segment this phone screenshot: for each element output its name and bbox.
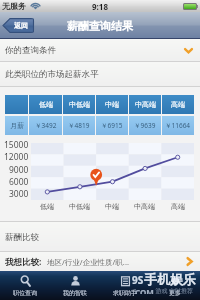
staticText: 地区/行业/企业性质/职... (47, 257, 129, 267)
staticText: 高端 (171, 202, 185, 211)
staticText: 高端 (171, 100, 185, 109)
staticText: ￥3492 (35, 121, 57, 130)
staticText: 薪酬查询结果 (67, 19, 133, 33)
button[interactable]: 我想比较: (0, 252, 200, 271)
staticText: 15000 (4, 139, 29, 151)
button[interactable]: 此类职位的市场起薪水平 (0, 62, 200, 87)
staticText: 中低端 (69, 202, 90, 211)
button[interactable]: 更多 (150, 271, 200, 300)
staticText: 3000 (9, 188, 29, 200)
staticText: 无服务 (2, 1, 26, 11)
staticText: 低端 (40, 202, 54, 211)
staticText: 求职助手 (113, 289, 137, 297)
staticText: 游戏 实时推荐 (154, 287, 194, 294)
staticText: 中高端 (134, 202, 155, 211)
staticText: 9S (132, 273, 144, 287)
staticText: 12000 (4, 151, 29, 163)
staticText: 中高端 (135, 100, 156, 109)
staticText: 低端 (39, 100, 53, 109)
staticText: 9:18 (92, 1, 108, 12)
staticText: ￥11664 (165, 121, 191, 130)
staticText: 我想比较: (5, 256, 42, 268)
staticText: 月薪 (10, 121, 24, 130)
staticText: 中端 (105, 202, 119, 211)
staticText: 返回 (14, 21, 28, 30)
button[interactable]: 求职助手 (100, 271, 150, 300)
staticText: 6000 (9, 176, 29, 188)
button[interactable]: 你的查询条件 (0, 39, 200, 62)
button[interactable]: 职位查询 (0, 271, 50, 300)
staticText: 此类职位的市场起薪水平 (5, 69, 99, 80)
staticText: 中低端 (69, 100, 90, 109)
staticText: 薪酬比较 (5, 232, 39, 243)
staticText: 9000 (9, 164, 29, 176)
staticText: ￥6915 (101, 121, 123, 130)
staticText: 手机娱乐 (144, 271, 196, 287)
staticText: COM (135, 287, 154, 294)
button[interactable]: 我的智联 (50, 271, 100, 300)
button[interactable]: 薪酬比较 (0, 222, 200, 252)
staticText: 你的查询条件 (5, 45, 56, 56)
staticText: ￥9639 (134, 121, 156, 130)
staticText: 我的智联 (63, 289, 87, 297)
staticText: ￥4819 (68, 121, 90, 130)
staticText: 职位查询 (13, 289, 37, 297)
staticText: 中端 (105, 100, 119, 109)
staticText: 更多 (169, 289, 181, 297)
button[interactable]: 返回 (2, 18, 34, 33)
